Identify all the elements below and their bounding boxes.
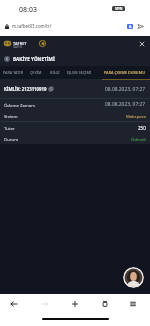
button[interactable]: Menu <box>122 294 144 314</box>
staticText: BAKİYE YÖNETİMİ <box>13 56 55 62</box>
button[interactable]: Ödeme Zamanı <box>4 99 146 110</box>
staticText: PARA ÇEKME DURUMU <box>104 70 145 75</box>
button[interactable]: Share <box>137 23 144 30</box>
staticText: KİMLİK: 2123110919 <box>4 86 47 92</box>
button[interactable]: New tab <box>64 294 86 314</box>
button[interactable]: BİLGİ <box>49 67 61 79</box>
staticText: A <box>129 24 132 29</box>
staticText: 08:03 <box>19 5 37 15</box>
staticText: İŞLEM SEÇİMİ <box>67 70 92 75</box>
staticText: Durum <box>4 136 19 142</box>
staticText: 08.08.2023, 07:27 <box>105 86 146 93</box>
staticText: BİLGİ <box>50 70 60 75</box>
staticText: PARA YATIR <box>3 70 23 75</box>
button[interactable]: Tafbet home <box>4 41 11 46</box>
button[interactable]: ÇEKİM <box>29 67 43 79</box>
staticText: BAHIS <box>13 45 23 49</box>
button[interactable]: Back <box>3 294 25 314</box>
staticText: m.tafbet93.com/tr/ <box>12 23 52 29</box>
button[interactable]: Close <box>140 42 144 46</box>
button[interactable]: Sistem <box>4 110 146 121</box>
staticText: 250 <box>138 125 146 131</box>
staticText: Ödendi <box>131 136 146 142</box>
staticText: ÇEKİM <box>30 70 42 75</box>
staticText: Sistem <box>4 113 18 119</box>
button[interactable]: PARA YATIR <box>2 67 24 79</box>
button[interactable]: İŞLEM SEÇİMİ <box>66 67 93 79</box>
staticText: 08.08.2023, 07:27 <box>105 101 146 108</box>
button[interactable]: BAKİYE YÖNETİMİ <box>0 51 150 66</box>
button[interactable]: KİMLİK: 2123110919 <box>4 80 146 98</box>
staticText: Ödeme Zamanı <box>4 102 36 108</box>
button[interactable]: Live support chat <box>123 267 144 288</box>
staticText: Makspara <box>126 113 146 119</box>
button[interactable]: PARA ÇEKME DURUMU <box>103 67 146 79</box>
button[interactable]: Forward <box>34 294 56 314</box>
button[interactable]: Support <box>39 40 46 47</box>
staticText: Tutar <box>4 125 15 131</box>
button[interactable]: Tutar <box>4 122 146 133</box>
staticText: TAFBET <box>13 41 27 46</box>
button[interactable]: Tabs <box>94 294 116 314</box>
button[interactable]: Durum <box>4 133 146 144</box>
button[interactable]: Translate page <box>127 24 133 29</box>
staticText: VPN <box>115 6 123 11</box>
